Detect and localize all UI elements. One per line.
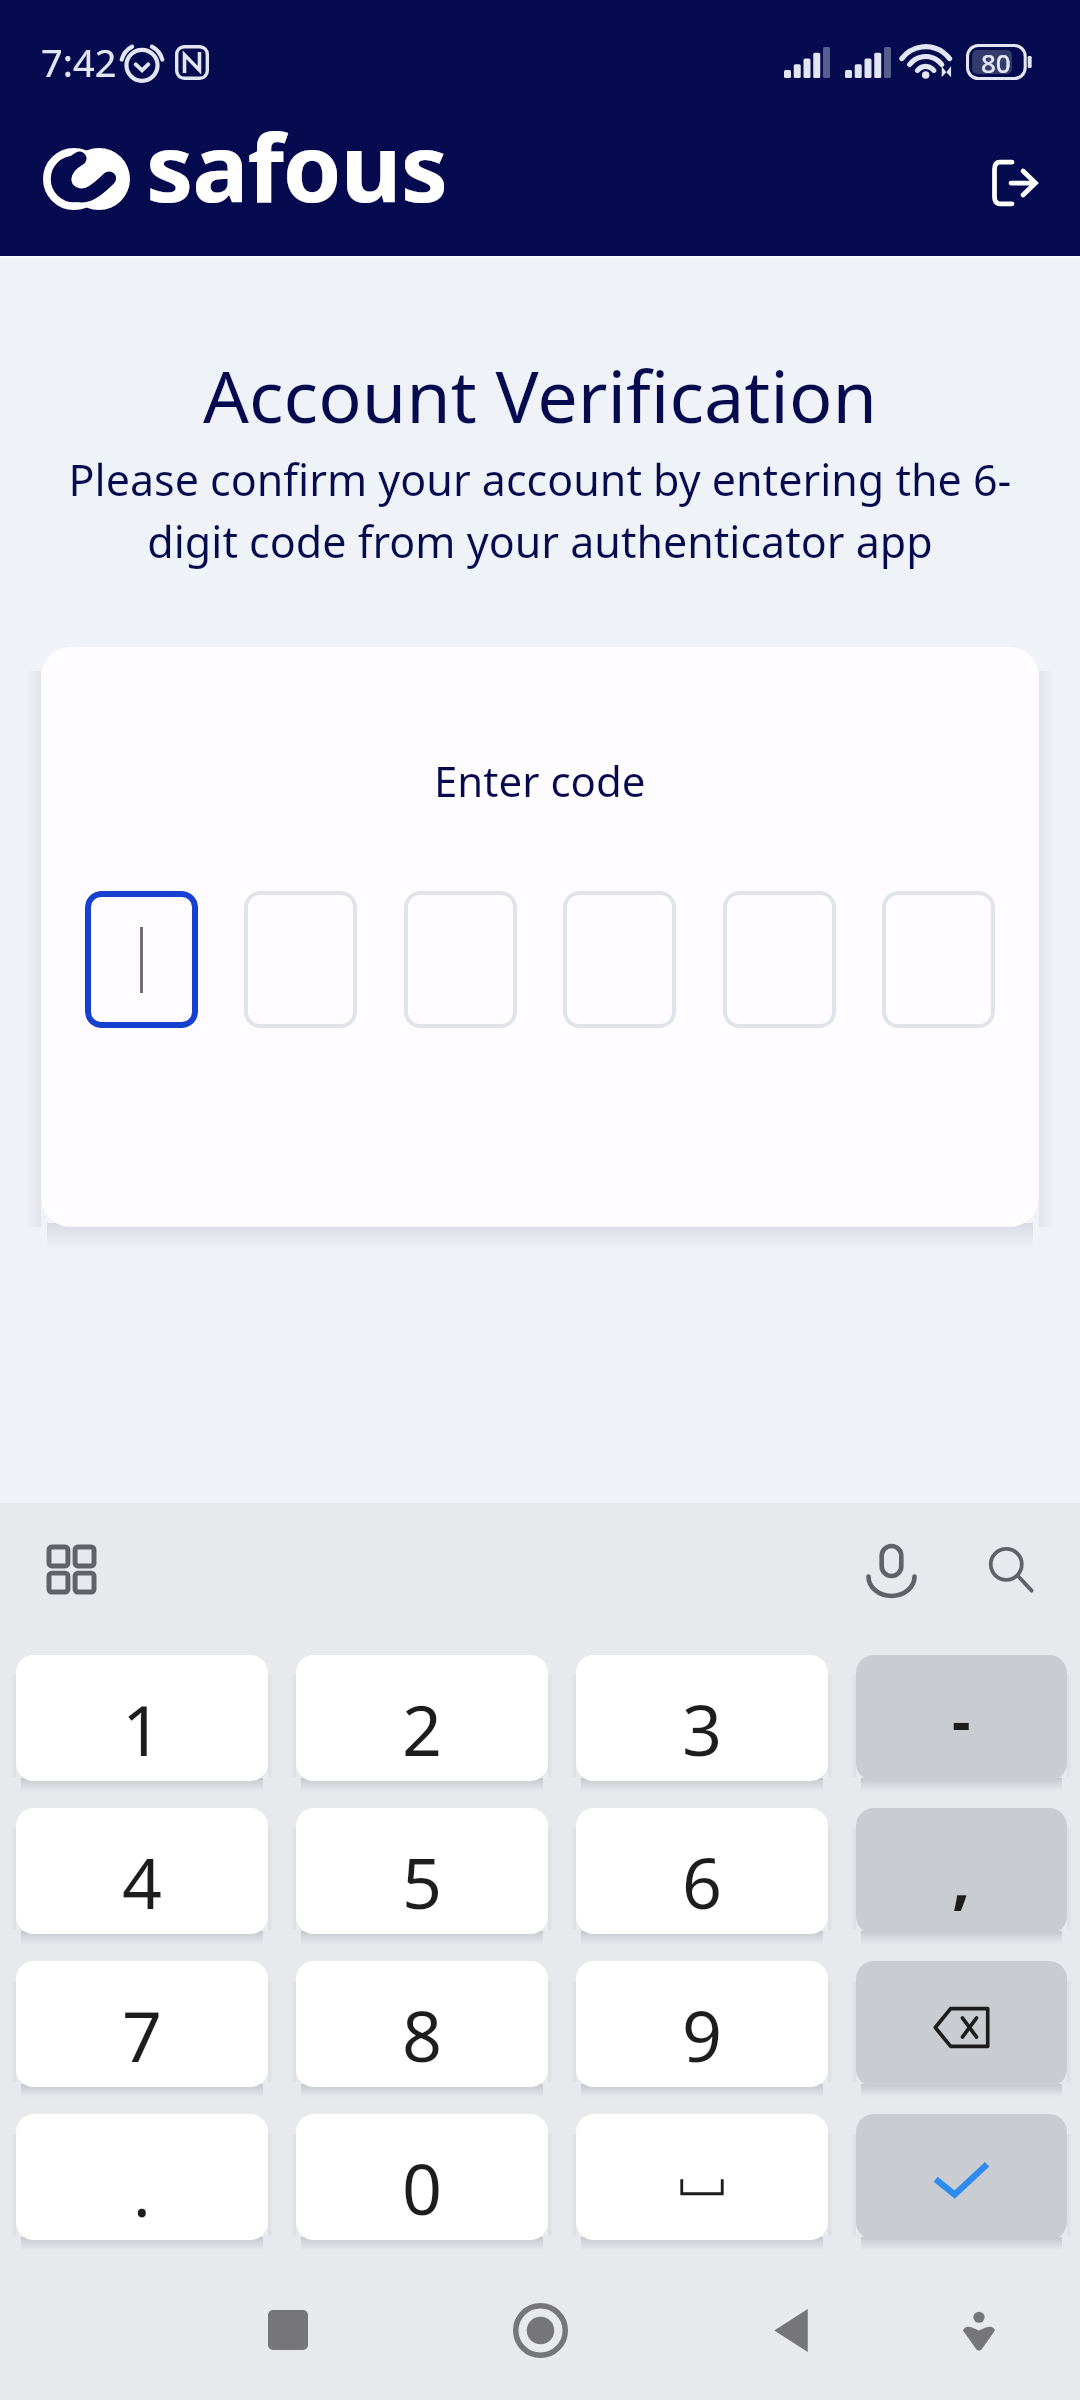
button[interactable]: Backspace: [856, 1961, 1067, 2087]
staticText: 2: [402, 1681, 443, 1776]
button[interactable]: Voice input: [841, 1519, 941, 1619]
staticText: -: [952, 1680, 971, 1759]
staticText: safous: [146, 102, 447, 230]
button[interactable]: 4: [16, 1808, 268, 1934]
button[interactable]: 3: [576, 1655, 828, 1781]
button[interactable]: Done: [856, 2114, 1067, 2240]
staticText: ,: [952, 1835, 971, 1922]
staticText: Account Verification: [203, 346, 877, 444]
staticText: 3: [682, 1681, 723, 1776]
staticText: 80: [981, 45, 1011, 80]
staticText: 9: [682, 1987, 723, 2082]
staticText: .: [133, 2146, 151, 2236]
staticText: 1: [122, 1681, 163, 1776]
staticText: 7:42: [41, 36, 117, 88]
staticText: 7: [122, 1987, 163, 2082]
button[interactable]: 9: [576, 1961, 828, 2087]
button[interactable]: ,: [856, 1808, 1067, 1934]
button[interactable]: Log out: [964, 133, 1064, 233]
button[interactable]: 0: [296, 2114, 548, 2240]
button[interactable]: 7: [16, 1961, 268, 2087]
button[interactable]: Back: [731, 2270, 851, 2390]
button[interactable]: Search: [960, 1519, 1060, 1619]
button[interactable]: 8: [296, 1961, 548, 2087]
staticText: 8: [402, 1987, 443, 2082]
button[interactable]: .: [16, 2114, 268, 2240]
staticText: Please confirm your account by entering …: [40, 450, 1040, 570]
staticText: 6: [682, 1834, 723, 1929]
button[interactable]: [723, 891, 836, 1028]
button[interactable]: 2: [296, 1655, 548, 1781]
button[interactable]: [85, 891, 198, 1028]
button[interactable]: Home: [480, 2270, 600, 2390]
button[interactable]: 1: [16, 1655, 268, 1781]
staticText: 5: [402, 1834, 443, 1929]
button[interactable]: Space: [576, 2114, 828, 2240]
button[interactable]: [563, 891, 676, 1028]
button[interactable]: -: [856, 1655, 1067, 1781]
button[interactable]: 5: [296, 1808, 548, 1934]
button[interactable]: Keyboard toolbar: [21, 1519, 121, 1619]
button[interactable]: [244, 891, 357, 1028]
staticText: Enter code: [434, 752, 646, 809]
button[interactable]: 6: [576, 1808, 828, 1934]
staticText: 4: [122, 1834, 163, 1929]
button[interactable]: Recent apps: [228, 2270, 348, 2390]
button[interactable]: [404, 891, 517, 1028]
staticText: 0: [402, 2140, 443, 2235]
button[interactable]: [882, 891, 995, 1028]
button[interactable]: Hide keyboard: [919, 2270, 1039, 2390]
